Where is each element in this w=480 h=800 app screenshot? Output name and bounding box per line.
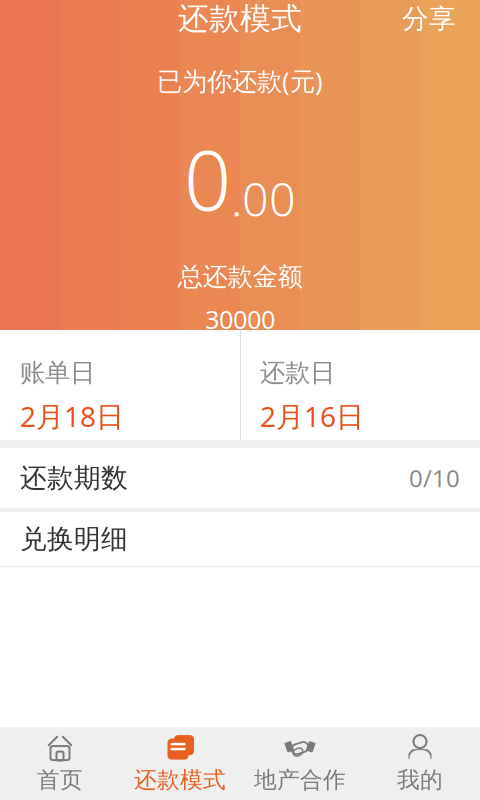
button[interactable]: 分享: [388, 0, 470, 43]
staticText: 还款模式: [178, 0, 302, 38]
button[interactable]: 我的: [360, 727, 480, 800]
staticText: 0/10: [409, 462, 460, 494]
button[interactable]: 兑换明细: [0, 512, 480, 566]
staticText: 2月18日: [20, 397, 124, 435]
staticText: .00: [231, 167, 296, 229]
staticText: 账单日: [20, 357, 95, 388]
staticText: 分享: [402, 2, 456, 35]
staticText: 30000: [205, 302, 275, 336]
staticText: 总还款金额: [177, 261, 302, 292]
staticText: 还款日: [260, 357, 335, 388]
staticText: 已为你还款(元): [157, 64, 323, 97]
staticText: 兑换明细: [20, 523, 128, 555]
button[interactable]: 地产合作: [240, 727, 360, 800]
staticText: 2月16日: [260, 397, 364, 435]
staticText: 还款模式: [134, 766, 226, 794]
staticText: 地产合作: [254, 766, 346, 794]
staticText: 首页: [37, 766, 83, 794]
button[interactable]: 首页: [0, 727, 120, 800]
staticText: 还款期数: [20, 462, 128, 494]
staticText: 0: [184, 124, 231, 233]
staticText: 我的: [397, 766, 443, 794]
button[interactable]: 还款模式: [120, 727, 240, 800]
button[interactable]: 还款期数: [0, 448, 480, 508]
